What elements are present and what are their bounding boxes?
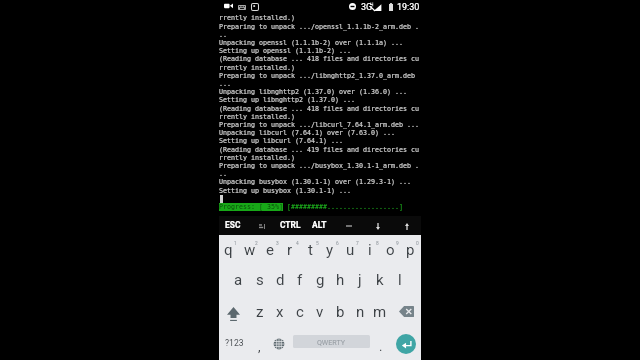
button[interactable]: g — [311, 266, 331, 297]
staticText: 19:30 — [397, 2, 420, 13]
button[interactable]: 4 — [281, 235, 301, 266]
staticText: [#########..................] — [283, 203, 403, 211]
staticText: s — [256, 271, 264, 289]
staticText: Unpacking libcurl (7.64.1) over (7.63.0)… — [219, 129, 395, 137]
button[interactable]: Backspace — [391, 298, 421, 329]
button[interactable]: 1 — [219, 235, 240, 266]
staticText: 7 — [356, 241, 359, 247]
staticText: 2 — [255, 241, 258, 247]
staticText: e — [266, 241, 274, 259]
staticText: 3G — [361, 2, 373, 13]
button[interactable]: Enter — [396, 334, 416, 354]
staticText: o — [386, 241, 395, 259]
staticText: Setting up openssl (1.1.1b-2) ... — [219, 47, 351, 55]
staticText: CTRL — [280, 220, 301, 230]
staticText: 1 — [234, 241, 237, 247]
staticText: f — [297, 271, 303, 289]
button[interactable]: QWERTY — [293, 335, 370, 348]
staticText: rrently installed.) — [219, 14, 295, 22]
button[interactable]: n — [351, 298, 371, 329]
staticText: . — [379, 339, 383, 354]
staticText: u — [346, 241, 355, 259]
staticText: rrently installed.) — [219, 154, 295, 162]
staticText: m — [373, 303, 387, 321]
button[interactable]: , — [251, 329, 268, 360]
button[interactable]: ?123 — [219, 329, 249, 360]
button[interactable]: Shift — [219, 298, 250, 329]
staticText: Preparing to unpack .../openssl_1.1.1b-2… — [219, 23, 419, 31]
staticText: .. — [219, 170, 227, 178]
button[interactable]: k — [371, 266, 391, 297]
button[interactable]: 8 — [361, 235, 381, 266]
other: Terminal output — [219, 0, 421, 216]
staticText: 4 — [296, 241, 299, 247]
staticText: n — [356, 303, 365, 321]
staticText: h — [336, 271, 345, 289]
button[interactable]: 9 — [381, 235, 401, 266]
staticText: rrently installed.) — [219, 64, 295, 72]
staticText: QWERTY — [317, 338, 346, 346]
button[interactable]: Change keyboard language — [270, 329, 288, 360]
staticText: 3 — [276, 241, 279, 247]
button[interactable]: d — [271, 266, 291, 297]
staticText: z — [256, 303, 264, 321]
button[interactable]: Minus — [334, 216, 363, 236]
button[interactable]: Arrow down — [363, 216, 392, 236]
button[interactable]: 3 — [261, 235, 281, 266]
staticText: , — [258, 339, 261, 354]
staticText: (Reading database ... 418 files and dire… — [219, 55, 419, 63]
staticText: b — [336, 303, 345, 321]
staticText: j — [358, 271, 362, 289]
button[interactable]: c — [291, 298, 311, 329]
staticText: k — [376, 271, 384, 289]
button[interactable]: f — [291, 266, 311, 297]
button[interactable]: v — [311, 298, 331, 329]
button[interactable]: 5 — [301, 235, 321, 266]
button[interactable]: ALT — [305, 216, 334, 236]
staticText: r — [287, 241, 293, 259]
button[interactable]: . — [372, 329, 389, 360]
button[interactable]: 2 — [240, 235, 261, 266]
staticText: Setting up busybox (1.30.1-1) ... — [219, 187, 351, 195]
button[interactable]: b — [331, 298, 351, 329]
staticText: 6 — [336, 241, 339, 247]
staticText: Unpacking busybox (1.30.1-1) over (1.29.… — [219, 178, 411, 186]
button[interactable]: s — [250, 266, 271, 297]
staticText: t — [308, 241, 313, 259]
button[interactable]: l — [391, 266, 411, 297]
button[interactable]: 0 — [401, 235, 421, 266]
button[interactable]: ESC — [219, 216, 247, 236]
staticText: 8 — [376, 241, 379, 247]
staticText: Setting up libnghttp2 (1.37.0) ... — [219, 96, 355, 104]
staticText: v — [316, 303, 324, 321]
staticText: ?123 — [225, 338, 244, 348]
staticText: .. — [219, 31, 227, 39]
staticText: Preparing to unpack .../busybox_1.30.1-1… — [219, 162, 419, 170]
staticText: q — [224, 241, 233, 259]
staticText: g — [316, 271, 325, 289]
staticText: Progress: [ 35%] — [219, 203, 283, 211]
button[interactable]: m — [371, 298, 391, 329]
button[interactable]: Arrow up — [392, 216, 421, 236]
staticText: Unpacking openssl (1.1.1b-2) over (1.1.1… — [219, 39, 403, 47]
button[interactable]: h — [331, 266, 351, 297]
button[interactable]: j — [351, 266, 371, 297]
staticText: (Reading database ... 419 files and dire… — [219, 146, 419, 154]
staticText: Setting up libcurl (7.64.1) ... — [219, 137, 343, 145]
staticText: Preparing to unpack .../libcurl_7.64.1_a… — [219, 121, 419, 129]
button[interactable]: CTRL — [276, 216, 305, 236]
staticText: i — [368, 241, 372, 259]
button[interactable]: z — [250, 298, 271, 329]
button[interactable]: a — [229, 266, 250, 297]
staticText: Unpacking libnghttp2 (1.37.0) over (1.36… — [219, 88, 407, 96]
staticText: d — [276, 271, 285, 289]
staticText: Preparing to unpack .../libnghttp2_1.37.… — [219, 72, 415, 80]
staticText: w — [244, 241, 256, 259]
staticText: rrently installed.) — [219, 113, 295, 121]
staticText: p — [406, 241, 415, 259]
staticText: 5 — [316, 241, 319, 247]
button[interactable]: Tab — [247, 216, 276, 236]
button[interactable]: x — [271, 298, 291, 329]
button[interactable]: 7 — [341, 235, 361, 266]
button[interactable]: 6 — [321, 235, 341, 266]
